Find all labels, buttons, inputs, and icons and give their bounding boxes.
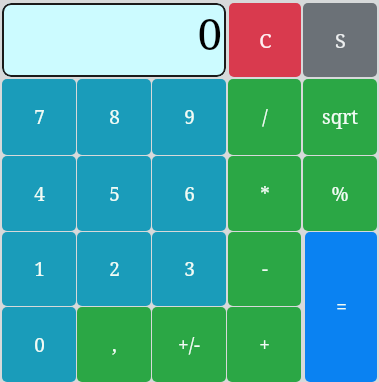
button[interactable]: +/- <box>152 307 226 382</box>
staticText: +/- <box>178 332 200 358</box>
button[interactable]: + <box>227 307 301 382</box>
staticText: - <box>262 256 268 282</box>
button[interactable]: 5 <box>77 156 151 231</box>
staticText: 3 <box>184 256 195 282</box>
staticText: 7 <box>34 104 45 130</box>
staticText: + <box>259 332 270 358</box>
staticText: = <box>336 294 347 320</box>
button[interactable]: 3 <box>152 232 226 306</box>
staticText: S <box>335 27 346 54</box>
staticText: 4 <box>34 181 45 207</box>
staticText: 9 <box>184 104 195 130</box>
staticText: 0 <box>34 332 45 358</box>
button[interactable]: 0 <box>2 3 226 77</box>
staticText: 5 <box>109 181 120 207</box>
staticText: 1 <box>34 256 45 282</box>
staticText: 6 <box>184 181 195 207</box>
staticText: 2 <box>109 256 120 282</box>
staticText: , <box>112 332 117 358</box>
button[interactable]: 2 <box>77 232 151 306</box>
button[interactable]: C <box>229 3 301 77</box>
button[interactable]: 4 <box>2 156 76 231</box>
staticText: / <box>262 104 268 130</box>
staticText: * <box>260 181 270 207</box>
button[interactable]: 1 <box>2 232 76 306</box>
button[interactable]: / <box>228 79 301 155</box>
staticText: 0 <box>197 3 222 63</box>
button[interactable]: % <box>303 156 377 231</box>
button[interactable]: 7 <box>2 79 76 155</box>
button[interactable]: 8 <box>77 79 151 155</box>
button[interactable]: 9 <box>152 79 226 155</box>
staticText: % <box>331 181 349 207</box>
button[interactable]: * <box>228 156 301 231</box>
button[interactable]: sqrt <box>303 79 377 155</box>
button[interactable]: - <box>228 232 301 306</box>
button[interactable]: 0 <box>2 307 76 382</box>
staticText: 8 <box>109 104 120 130</box>
staticText: sqrt <box>322 104 358 130</box>
button[interactable]: 6 <box>152 156 226 231</box>
button[interactable]: , <box>77 307 151 382</box>
button[interactable]: Equals <box>305 232 377 382</box>
staticText: C <box>259 27 272 54</box>
button[interactable]: S <box>303 3 377 77</box>
